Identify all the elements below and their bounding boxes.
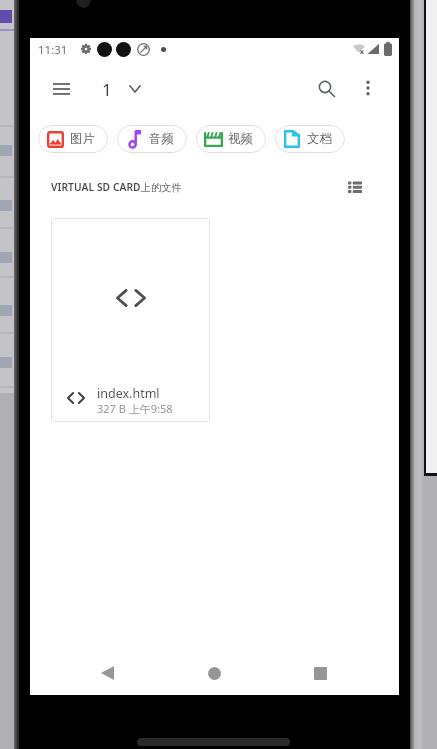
button[interactable]: Search — [303, 65, 349, 111]
button[interactable]: index.html — [51, 218, 210, 422]
staticText: 音频 — [149, 131, 174, 147]
staticText: 327 B 上午9:58 — [97, 401, 173, 416]
button[interactable]: More options — [345, 65, 391, 111]
button[interactable]: Navigation menu — [38, 66, 84, 112]
staticText: 图片 — [70, 131, 95, 147]
staticText: 1 — [102, 78, 112, 101]
button[interactable]: 视频 — [196, 125, 266, 153]
button[interactable]: Home — [190, 649, 238, 697]
button[interactable]: Switch to list view — [338, 174, 372, 200]
button[interactable]: Back — [83, 649, 131, 697]
button[interactable]: Recent apps — [296, 649, 344, 697]
button[interactable]: 1 — [96, 72, 147, 106]
staticText: 11:31 — [38, 42, 68, 58]
staticText: VIRTUAL SD CARD上的文件 — [51, 180, 182, 194]
staticText: 文档 — [307, 131, 332, 147]
button[interactable]: 音频 — [117, 125, 187, 153]
staticText: 视频 — [228, 131, 253, 147]
button[interactable]: 图片 — [38, 125, 108, 153]
button[interactable]: 文档 — [275, 125, 345, 153]
staticText: index.html — [97, 385, 160, 402]
